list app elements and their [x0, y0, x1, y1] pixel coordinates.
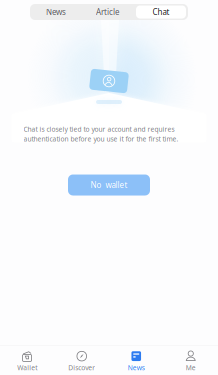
staticText: No wallet	[90, 180, 127, 190]
staticText: News	[128, 363, 145, 372]
staticText: Chat	[152, 7, 169, 17]
button[interactable]: Me	[163, 346, 218, 375]
staticText: Article	[96, 7, 120, 17]
staticText: Chat is closely tied to your account and…	[23, 125, 174, 133]
staticText: Me	[186, 363, 196, 372]
button[interactable]: Discover	[54, 346, 109, 375]
button[interactable]: No wallet	[68, 174, 150, 195]
button[interactable]: News	[30, 4, 82, 20]
staticText: Discover	[68, 363, 95, 372]
staticText: authentication before you use it for the…	[23, 134, 178, 143]
staticText: Wallet	[17, 363, 37, 372]
button[interactable]: Wallet	[0, 346, 54, 375]
button[interactable]: Article	[82, 4, 134, 20]
staticText: News	[46, 7, 66, 17]
button[interactable]: Chat	[134, 4, 188, 20]
button[interactable]: News	[109, 346, 163, 375]
